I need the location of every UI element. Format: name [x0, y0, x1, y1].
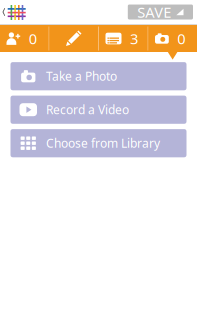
- button[interactable]: Back: [0, 0, 26, 24]
- button[interactable]: Photos: [148, 25, 197, 52]
- button[interactable]: Choose from Library: [10, 129, 186, 157]
- button[interactable]: Take a Photo: [10, 62, 186, 90]
- staticText: Record a Video: [46, 102, 129, 118]
- button[interactable]: Cards: [99, 25, 147, 52]
- button[interactable]: Record a Video: [10, 96, 186, 124]
- staticText: 0: [29, 29, 37, 48]
- button[interactable]: Invite people: [0, 25, 48, 52]
- button[interactable]: Edit: [49, 25, 98, 52]
- staticText: Take a Photo: [46, 68, 117, 84]
- staticText: 3: [130, 29, 138, 48]
- button[interactable]: Save: [128, 4, 193, 19]
- staticText: Choose from Library: [46, 135, 160, 151]
- staticText: 0: [177, 29, 185, 48]
- staticText: SAVE: [137, 2, 171, 22]
